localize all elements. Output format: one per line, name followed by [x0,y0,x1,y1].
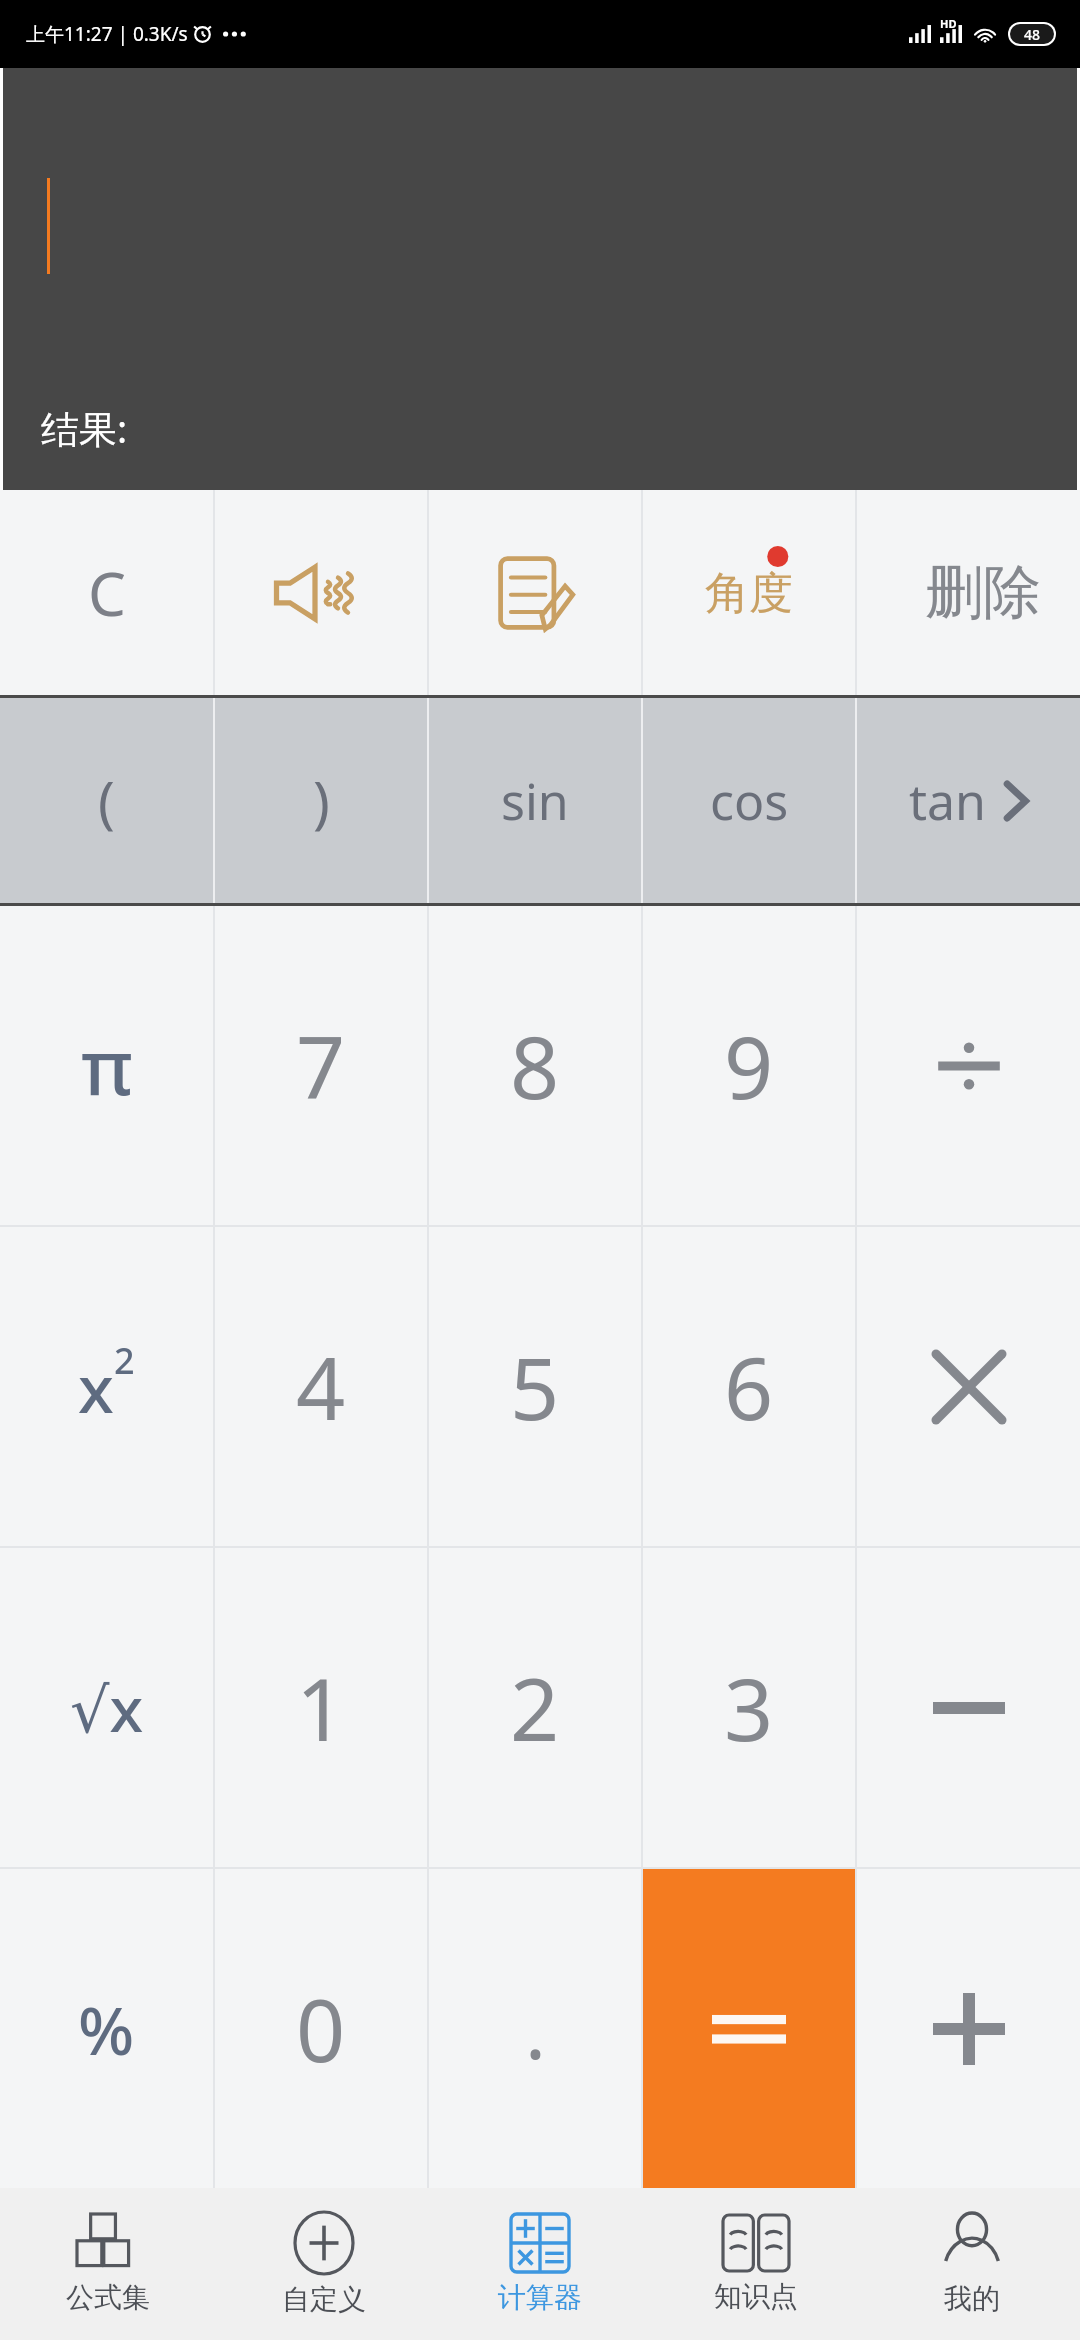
staticText: 6 [724,1328,774,1445]
button[interactable]: 4 [215,1227,427,1546]
button[interactable]: 知识点 [648,2188,864,2340]
staticText: ( [98,763,115,839]
button[interactable]: 公式集 [0,2188,216,2340]
staticText: HD [940,16,957,31]
button[interactable] [857,906,1080,1225]
button[interactable]: 7 [215,906,427,1225]
button[interactable]: % [0,1869,213,2188]
button[interactable]: x [0,1227,213,1546]
button[interactable]: 6 [643,1227,855,1546]
staticText: 自定义 [282,2282,366,2317]
button[interactable]: Angle mode [643,490,855,695]
button[interactable]: sin [429,698,641,903]
staticText: 48 [1024,25,1041,44]
button[interactable]: 3 [643,1548,855,1867]
staticText: 结果: [41,402,128,454]
staticText: 8 [510,1007,560,1124]
button[interactable]: ( [0,698,213,903]
button[interactable]: . [429,1869,641,2188]
staticText: 4 [296,1328,346,1445]
button[interactable]: π [0,906,213,1225]
button[interactable] [857,1548,1080,1867]
staticText: 角度 [705,566,793,621]
button[interactable]: tan [857,698,1080,903]
staticText: 2 [510,1649,560,1766]
staticText: tan [909,767,986,835]
button[interactable]: 删除 [857,490,1080,695]
staticText: cos [710,767,789,835]
staticText: sin [501,767,569,835]
button[interactable] [857,1869,1080,2188]
staticText: 3 [724,1649,774,1766]
staticText: % [78,1984,135,2074]
staticText: 0 [296,1970,346,2087]
staticText: 7 [296,1007,346,1124]
staticText: 公式集 [66,2280,150,2315]
button[interactable]: √x [0,1548,213,1867]
button[interactable]: cos [643,698,855,903]
staticText: 知识点 [714,2279,798,2314]
button[interactable]: Notes [429,490,641,695]
staticText: 计算器 [498,2280,582,2315]
button[interactable]: 0 [215,1869,427,2188]
button[interactable]: 9 [643,906,855,1225]
staticText: ) [313,763,330,839]
staticText: x [78,1342,114,1432]
staticText: 删除 [925,556,1041,629]
button[interactable]: 8 [429,906,641,1225]
staticText: 9 [724,1007,774,1124]
staticText: . [525,1976,546,2082]
staticText: 我的 [944,2281,1000,2316]
button[interactable]: ) [215,698,427,903]
staticText: 上午11:27 | 0.3K/s [26,21,188,47]
staticText: C [88,552,126,634]
button[interactable] [643,1869,855,2188]
staticText: 2 [114,1336,135,1385]
button[interactable]: 我的 [864,2188,1080,2340]
staticText: 1 [296,1649,346,1766]
button[interactable] [857,1227,1080,1546]
button[interactable]: 自定义 [216,2188,432,2340]
button[interactable]: 计算器 [432,2188,648,2340]
staticText: 5 [510,1328,560,1445]
button[interactable]: C [0,490,213,695]
button[interactable]: Sound [215,490,427,695]
button[interactable]: 2 [429,1548,641,1867]
button[interactable]: 5 [429,1227,641,1546]
staticText: √x [70,1666,144,1750]
staticText: π [81,1014,133,1118]
button[interactable]: 1 [215,1548,427,1867]
